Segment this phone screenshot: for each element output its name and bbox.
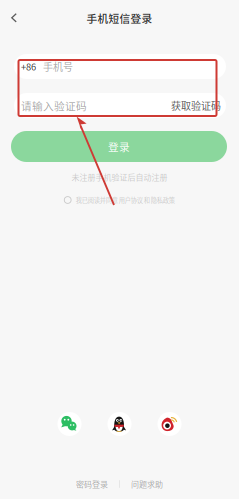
button[interactable]: 获取验证码 <box>171 98 221 113</box>
staticText: +86 <box>21 60 36 73</box>
staticText: 未注册手机验证后自动注册 <box>71 171 167 183</box>
staticText: 登录 <box>108 139 130 154</box>
staticText: 我已阅读并同意 用户协议 和 隐私政策 <box>76 195 175 205</box>
staticText: 手机短信登录 <box>86 10 152 26</box>
staticText: 密码登录 <box>76 478 108 490</box>
button[interactable]: 微信登录 <box>57 412 81 436</box>
staticText: 手机号 <box>43 59 73 74</box>
button[interactable]: 我已阅读并同意 用户协议 和 隐私政策 <box>64 193 175 207</box>
staticText: 获取验证码 <box>171 98 221 113</box>
button[interactable]: 微博登录 <box>157 412 181 436</box>
button[interactable]: 登录 <box>11 131 227 162</box>
button[interactable]: 问题求助 <box>131 476 175 492</box>
button[interactable]: 密码登录 <box>64 476 108 492</box>
button[interactable]: QQ 登录 <box>107 412 131 436</box>
staticText: 请输入验证码 <box>21 98 87 113</box>
button[interactable]: 返回 <box>0 3 28 33</box>
staticText: 问题求助 <box>131 478 163 490</box>
